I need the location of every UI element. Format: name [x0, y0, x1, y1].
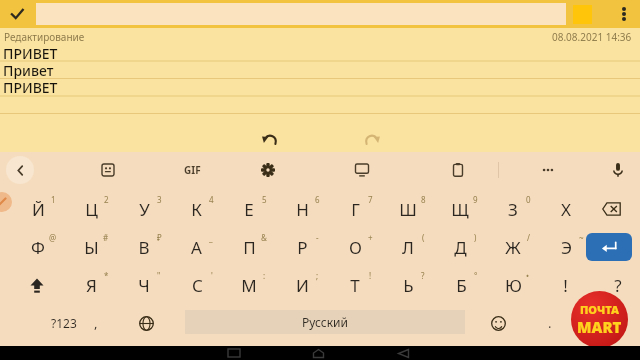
staticText: 2	[104, 194, 109, 205]
staticText: .	[548, 314, 552, 332]
button[interactable]: Л	[390, 233, 426, 261]
button[interactable]: !	[547, 271, 583, 299]
button[interactable]: Shift	[18, 271, 56, 299]
button[interactable]: Буфер обмена	[442, 156, 474, 184]
button[interactable]: Ч	[126, 271, 162, 299]
staticText: GIF	[184, 163, 201, 177]
button[interactable]: Русский	[185, 310, 465, 334]
staticText: _	[209, 232, 213, 243]
button[interactable]: ,	[70, 308, 122, 338]
button[interactable]: Ы	[73, 233, 109, 261]
button[interactable]: Я	[73, 271, 109, 299]
staticText: Ж	[505, 236, 521, 259]
button[interactable]: Enter	[586, 233, 632, 261]
button[interactable]: Х	[548, 195, 584, 223]
button[interactable]: Е	[231, 195, 267, 223]
button[interactable]: Ещё	[608, 0, 640, 28]
staticText: 6	[315, 194, 320, 205]
button[interactable]: И	[284, 271, 320, 299]
button[interactable]: Ю	[495, 271, 531, 299]
button[interactable]: Г	[337, 195, 373, 223]
button[interactable]: Ь	[390, 271, 426, 299]
staticText: °	[474, 270, 478, 281]
button[interactable]: Назад	[6, 156, 34, 184]
button[interactable]: ?	[600, 271, 636, 299]
button[interactable]: ?123	[38, 308, 90, 338]
button[interactable]: У	[126, 195, 162, 223]
button[interactable]: Отменить	[250, 127, 290, 152]
button[interactable]: М	[231, 271, 267, 299]
staticText: &	[261, 232, 267, 243]
staticText: Редактирование	[4, 30, 85, 44]
button[interactable]: Недавние	[228, 349, 240, 357]
staticText: ?123	[51, 315, 77, 331]
staticText: З	[508, 198, 518, 221]
button[interactable]: Э	[548, 233, 584, 261]
button[interactable]: Повторить	[352, 127, 392, 152]
button[interactable]: Ж	[495, 233, 531, 261]
button[interactable]: Ф	[20, 233, 56, 261]
staticText: @	[49, 232, 57, 243]
button[interactable]: Голосовой ввод	[602, 156, 634, 184]
button[interactable]: Стикеры	[92, 156, 124, 184]
button[interactable]: Подтвердить	[0, 0, 34, 28]
button[interactable]: Рукописный ввод	[0, 192, 12, 212]
staticText: Х	[561, 198, 571, 221]
button[interactable]: А	[178, 233, 214, 261]
button[interactable]: Раскладка	[346, 156, 378, 184]
staticText: Д	[454, 236, 467, 259]
staticText: К	[191, 198, 202, 221]
staticText: /	[527, 232, 530, 243]
staticText: !	[369, 270, 372, 281]
staticText: Русский	[302, 314, 348, 330]
button[interactable]: П	[231, 233, 267, 261]
button[interactable]: Д	[442, 233, 478, 261]
button[interactable]: Сменить язык	[126, 308, 166, 338]
staticText: У	[139, 198, 150, 221]
button[interactable]: .	[530, 308, 570, 338]
button[interactable]: Назад	[398, 349, 409, 358]
staticText: Ю	[505, 274, 522, 297]
staticText: С	[192, 274, 203, 297]
button[interactable]: Домой	[313, 349, 324, 358]
button[interactable]: О	[337, 233, 373, 261]
staticText: ~	[579, 232, 584, 243]
button[interactable]: З	[495, 195, 531, 223]
staticText: Ш	[399, 198, 417, 221]
staticText: ПОЧТА	[580, 302, 620, 317]
staticText: '	[211, 270, 213, 281]
staticText: (	[422, 232, 425, 243]
button[interactable]: Т	[337, 271, 373, 299]
button[interactable]: К	[178, 195, 214, 223]
staticText: :	[263, 270, 266, 281]
staticText: Ы	[84, 236, 99, 259]
staticText: Ь	[403, 274, 414, 297]
button[interactable]: GIF	[172, 156, 212, 184]
button[interactable]: Щ	[442, 195, 478, 223]
button[interactable]: Ц	[73, 195, 109, 223]
staticText: -	[316, 232, 319, 243]
staticText: ₽	[157, 232, 162, 243]
button[interactable]: Б	[443, 271, 479, 299]
button[interactable]: Й	[20, 195, 56, 223]
button[interactable]: Ш	[390, 195, 426, 223]
button[interactable]: Ещё	[532, 156, 564, 184]
staticText: 8	[421, 194, 426, 205]
button[interactable]: Н	[284, 195, 320, 223]
staticText: "	[157, 270, 161, 281]
button[interactable]: Эмодзи	[478, 308, 518, 338]
staticText: М	[241, 274, 257, 297]
button[interactable]: Backspace	[594, 196, 628, 222]
button[interactable]: Р	[284, 233, 320, 261]
button[interactable]: С	[179, 271, 215, 299]
staticText: 1	[51, 194, 56, 205]
staticText: Ц	[85, 198, 98, 221]
button[interactable]: Настройки	[252, 156, 284, 184]
staticText: *	[104, 270, 109, 281]
staticText: 7	[368, 194, 373, 205]
staticText: Н	[296, 198, 309, 221]
button[interactable]: В	[126, 233, 162, 261]
staticText: Й	[32, 198, 45, 221]
